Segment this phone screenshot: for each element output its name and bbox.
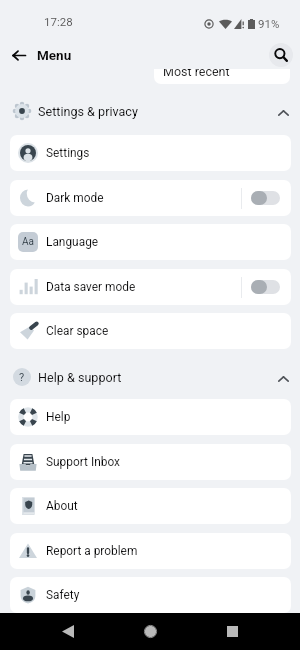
staticText: Menu xyxy=(37,47,72,63)
button[interactable]: Clear space xyxy=(10,313,291,349)
button[interactable]: Data saver mode xyxy=(10,269,291,305)
staticText: About xyxy=(46,499,78,513)
staticText: Clear space xyxy=(46,324,109,338)
staticText: Help & support xyxy=(38,370,122,385)
staticText: Settings & privacy xyxy=(38,104,138,119)
button[interactable]: Aa xyxy=(10,224,291,260)
staticText: Most recent xyxy=(163,64,230,79)
staticText: Support Inbox xyxy=(46,455,120,469)
button[interactable]: Dark mode xyxy=(10,180,291,216)
button[interactable]: Settings & privacy xyxy=(0,97,300,125)
staticText: Language xyxy=(46,235,99,249)
button[interactable]: Toggle Data saver mode xyxy=(251,280,280,294)
button[interactable]: Back xyxy=(4,40,34,70)
staticText: Data saver mode xyxy=(46,280,136,294)
staticText: 91% xyxy=(258,17,280,30)
button[interactable]: Report a problem xyxy=(10,533,291,569)
button[interactable]: About xyxy=(10,488,291,524)
button[interactable]: Home xyxy=(132,613,168,650)
button[interactable]: Recents xyxy=(214,613,250,650)
staticText: 17:28 xyxy=(44,15,73,28)
staticText: Settings xyxy=(46,146,90,160)
button[interactable]: Settings xyxy=(10,135,291,171)
button[interactable]: Safety xyxy=(10,577,291,613)
button[interactable]: Back xyxy=(50,613,86,650)
staticText: Help xyxy=(46,410,71,424)
button[interactable]: ? xyxy=(0,363,300,391)
button[interactable]: Help xyxy=(10,399,291,435)
staticText: ? xyxy=(19,371,25,384)
button[interactable]: Search xyxy=(269,43,293,67)
button[interactable]: Support Inbox xyxy=(10,444,291,480)
button[interactable]: Toggle Dark mode xyxy=(251,191,280,205)
staticText: Aa xyxy=(22,236,34,248)
staticText: Report a problem xyxy=(46,544,138,558)
staticText: Dark mode xyxy=(46,191,104,205)
staticText: Safety xyxy=(46,588,80,602)
button[interactable]: Most recent xyxy=(154,56,290,84)
